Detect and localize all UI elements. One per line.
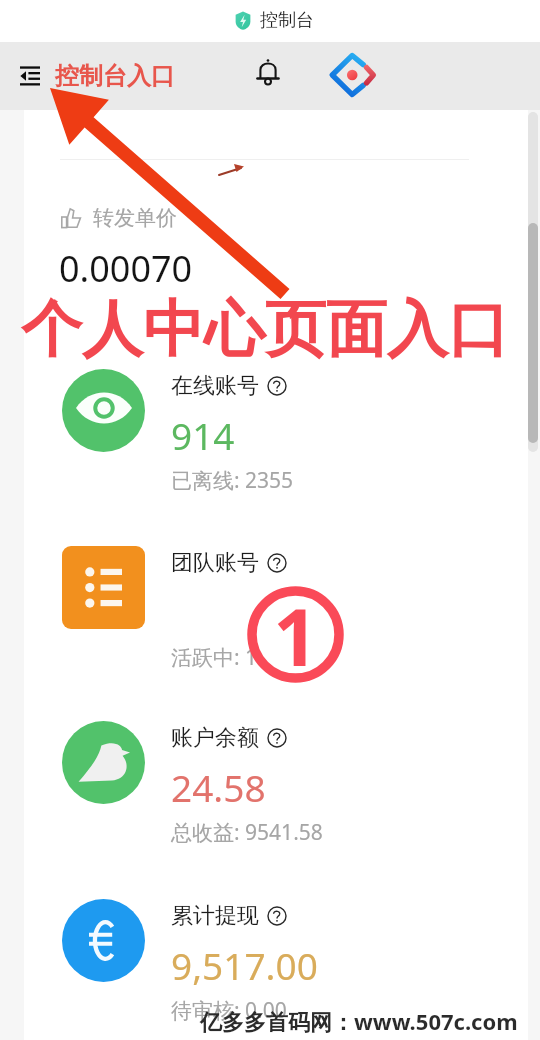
staticText: 总收益: 9541.58 [171, 818, 323, 847]
staticText: 累计提现 [171, 902, 259, 930]
button[interactable]: 团队账号 [24, 545, 528, 721]
staticText: 个人中心页面入口 [21, 291, 509, 368]
button[interactable]: App logo [328, 51, 376, 99]
staticText: 亿多多首码网：www.507c.com [200, 1006, 518, 1036]
staticText: 转发单价 [93, 205, 177, 231]
staticText: 团队账号 [171, 549, 259, 577]
staticText: 1 [273, 583, 318, 680]
staticText: 待审核: 0.00 [171, 996, 287, 1025]
button[interactable]: 控制台入口 [55, 58, 175, 94]
button[interactable]: Notifications [248, 52, 288, 92]
button[interactable]: Menu [13, 59, 47, 93]
staticText: 914 [171, 410, 235, 460]
staticText: 控制台 [260, 9, 314, 32]
staticText: 9,517.00 [171, 940, 318, 990]
staticText: 已离线: 2355 [171, 466, 294, 495]
button[interactable]: 账户余额 [24, 720, 528, 896]
staticText: 账户余额 [171, 724, 259, 752]
staticText: 0.00070 [59, 244, 193, 293]
staticText: 在线账号 [171, 372, 259, 400]
button[interactable]: 累计提现 [24, 898, 528, 1040]
button[interactable]: 在线账号 [24, 368, 528, 544]
staticText: 活跃中: 1 [171, 643, 258, 672]
staticText: 24.58 [171, 762, 266, 812]
